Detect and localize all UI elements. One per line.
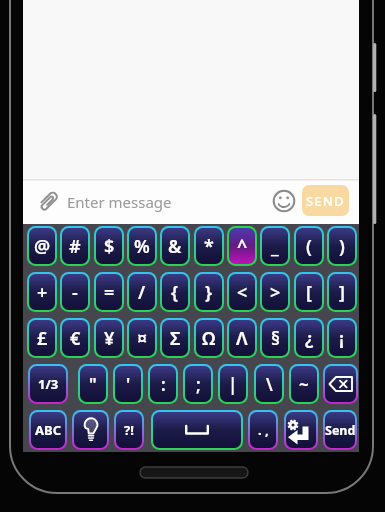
button[interactable]: * [194,226,224,266]
button[interactable] [284,410,318,450]
button[interactable]: @ [27,226,57,266]
staticText: ( [306,234,312,259]
staticText: + [37,280,48,305]
button[interactable]: § [260,318,290,358]
staticText: / [138,280,146,305]
staticText: Σ [170,326,181,351]
staticText: Enter message [67,192,172,212]
button[interactable]: ABC [29,410,67,450]
staticText: € [70,326,81,351]
button[interactable] [35,187,65,216]
staticText: ¤ [137,326,148,351]
button[interactable]: ^ [227,226,257,266]
staticText: SEND [306,192,345,210]
staticText: ; [196,373,201,396]
button[interactable]: = [94,272,124,312]
staticText: ?! [124,421,134,439]
staticText: ¥ [104,326,115,351]
button[interactable] [323,364,358,404]
button[interactable]: < [227,272,257,312]
button[interactable]: ?! [114,410,144,450]
button[interactable] [72,410,109,450]
button[interactable]: ¤ [127,318,157,358]
button[interactable]: + [27,272,57,312]
button[interactable]: / [127,272,157,312]
button[interactable]: % [127,226,157,266]
button[interactable] [271,188,297,214]
staticText: } [205,280,213,305]
button[interactable]: | [218,364,248,404]
staticText: " [89,373,97,396]
staticText: Ω [202,326,216,351]
button[interactable]: $ [94,226,124,266]
staticText: @ [34,234,51,259]
button[interactable]: @ [23,224,359,452]
button[interactable]: & [160,226,190,266]
button[interactable]: ( [294,226,324,266]
staticText: . , [258,421,269,439]
staticText: ^ [237,234,248,259]
button[interactable]: € [60,318,90,358]
button[interactable]: ' [113,364,143,404]
staticText: ABC [35,421,61,439]
button[interactable]: ¡ [327,318,357,358]
button[interactable]: [ [294,272,324,312]
staticText: * [204,234,214,259]
staticText: < [237,280,248,305]
button[interactable]: Ω [194,318,224,358]
staticText: & [168,234,182,259]
staticText: 1/3 [38,375,59,393]
staticText: { [171,280,179,305]
button[interactable]: # [60,226,90,266]
button[interactable]: } [194,272,224,312]
staticText: Send [325,422,355,439]
button[interactable]: - [60,272,90,312]
staticText: § [271,326,280,351]
staticText: = [104,280,115,305]
button[interactable]: . , [248,410,278,450]
button[interactable]: _ [260,226,290,266]
button[interactable]: Λ [227,318,257,358]
staticText: £ [37,326,48,351]
staticText: % [134,234,150,259]
staticText: ' [126,373,131,396]
button[interactable]: : [148,364,178,404]
staticText: \ [266,373,273,396]
staticText: | [228,373,238,396]
button[interactable]: \ [254,364,284,404]
staticText: $ [104,234,115,259]
staticText: ~ [299,373,309,396]
button[interactable]: £ [27,318,57,358]
button[interactable] [151,410,243,450]
button[interactable]: " [78,364,108,404]
button[interactable]: 1/3 [28,364,68,404]
button[interactable]: > [260,272,290,312]
staticText: _ [271,234,279,259]
button[interactable]: ) [327,226,357,266]
button[interactable]: Send [323,410,357,450]
staticText: [ [306,280,312,305]
staticText: # [69,234,81,259]
staticText: : [161,373,166,396]
staticText: ) [339,234,345,259]
button[interactable]: ] [327,272,357,312]
staticText: ¿ [305,326,314,351]
button[interactable]: ; [183,364,213,404]
button[interactable]: Enter message [65,183,269,220]
button[interactable]: { [160,272,190,312]
staticText: - [72,280,78,305]
button[interactable]: ¥ [94,318,124,358]
button[interactable]: SEND [302,185,349,216]
staticText: ] [339,280,345,305]
button[interactable]: ¿ [294,318,324,358]
staticText: ¡ [339,326,345,351]
staticText: Λ [236,326,248,351]
staticText: > [270,280,281,305]
button[interactable]: ~ [289,364,319,404]
button[interactable]: Σ [160,318,190,358]
